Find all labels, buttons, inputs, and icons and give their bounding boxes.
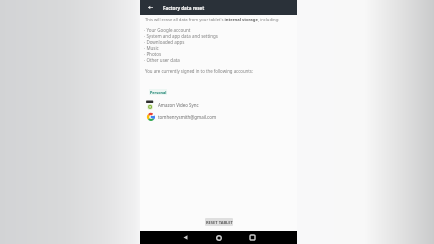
staticText: RESET TABLET [206, 220, 233, 225]
staticText: Amazon Video Sync [158, 102, 199, 108]
staticText: tomhenrysmith@gmail.com [158, 114, 217, 120]
staticText: Factory data reset [163, 5, 205, 11]
staticText: Personal [150, 90, 167, 95]
button[interactable]: Home [212, 231, 226, 244]
staticText: This will erase all data from your table… [145, 17, 302, 23]
button[interactable]: Back [144, 1, 157, 14]
button[interactable]: Amazon Video Sync [140, 99, 297, 110]
button[interactable]: RESET TABLET [205, 218, 233, 226]
staticText: You are currently signed in to the follo… [145, 68, 254, 74]
button[interactable]: Recent apps [245, 231, 259, 244]
button[interactable]: Back [178, 231, 192, 244]
staticText: · Your Google account · System and app d… [144, 27, 218, 63]
button[interactable]: tomhenrysmith@gmail.com [140, 111, 297, 122]
